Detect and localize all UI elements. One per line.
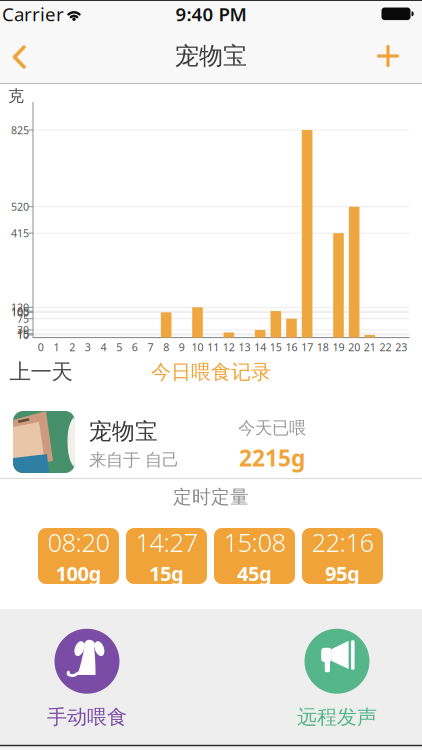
staticText: 21: [364, 340, 376, 354]
staticText: 17: [301, 340, 313, 354]
button[interactable]: 手动喂食: [47, 629, 127, 729]
staticText: 120: [11, 300, 29, 314]
staticText: 22:16: [311, 525, 373, 559]
button[interactable]: [366, 34, 410, 78]
staticText: 1: [53, 340, 59, 354]
staticText: 12: [223, 340, 235, 354]
staticText: 15: [270, 340, 282, 354]
staticText: 15g: [149, 560, 184, 587]
button[interactable]: 宠物宝: [0, 409, 422, 475]
staticText: 9: [179, 340, 185, 354]
staticText: 今天已喂: [238, 417, 306, 439]
button[interactable]: 上一天: [9, 359, 72, 385]
staticText: 100: [11, 305, 29, 319]
button[interactable]: 14:27: [126, 528, 207, 584]
button[interactable]: 远程发声: [297, 629, 377, 729]
staticText: 19: [332, 340, 344, 354]
button[interactable]: 今日喂食记录: [151, 360, 271, 384]
staticText: Carrier: [2, 2, 64, 26]
staticText: 8: [163, 340, 169, 354]
staticText: 4: [100, 340, 106, 354]
staticText: 6: [132, 340, 138, 354]
staticText: 20: [348, 340, 360, 354]
staticText: 宠物宝: [175, 41, 247, 71]
staticText: 415: [11, 226, 29, 240]
staticText: 16: [285, 340, 297, 354]
staticText: 13: [238, 340, 250, 354]
staticText: 08:20: [47, 525, 109, 559]
staticText: 520: [11, 200, 29, 214]
staticText: 来自于 自己: [89, 449, 179, 471]
staticText: 14: [254, 340, 266, 354]
staticText: 23: [395, 340, 407, 354]
staticText: 上一天: [9, 359, 72, 385]
staticText: 7: [147, 340, 153, 354]
staticText: 10: [191, 340, 203, 354]
staticText: 9:40 PM: [175, 2, 246, 26]
staticText: 5: [116, 340, 122, 354]
staticText: 手动喂食: [47, 705, 127, 729]
staticText: 95g: [325, 560, 360, 587]
staticText: 11: [207, 340, 219, 354]
staticText: 30: [17, 323, 29, 337]
staticText: 105: [11, 304, 29, 318]
staticText: 定时定量: [173, 485, 249, 508]
button[interactable]: 22:16: [302, 528, 383, 584]
staticText: 2215g: [239, 443, 305, 473]
button[interactable]: 08:20: [38, 528, 119, 584]
staticText: 75: [17, 312, 29, 326]
staticText: 宠物宝: [89, 417, 158, 445]
staticText: 2: [69, 340, 75, 354]
staticText: 14:27: [135, 525, 197, 559]
staticText: 22: [379, 340, 391, 354]
staticText: 今日喂食记录: [151, 360, 271, 384]
button[interactable]: [0, 35, 39, 79]
button[interactable]: 15:08: [214, 528, 295, 584]
staticText: 0: [38, 340, 44, 354]
staticText: 3: [85, 340, 91, 354]
staticText: 100g: [55, 560, 101, 587]
staticText: 45g: [237, 560, 272, 587]
staticText: 18: [317, 340, 329, 354]
staticText: 远程发声: [297, 705, 377, 729]
staticText: 15:08: [223, 525, 285, 559]
staticText: 10: [17, 328, 29, 342]
staticText: 15: [17, 327, 29, 341]
staticText: 825: [11, 123, 29, 137]
staticText: 克: [8, 86, 24, 106]
